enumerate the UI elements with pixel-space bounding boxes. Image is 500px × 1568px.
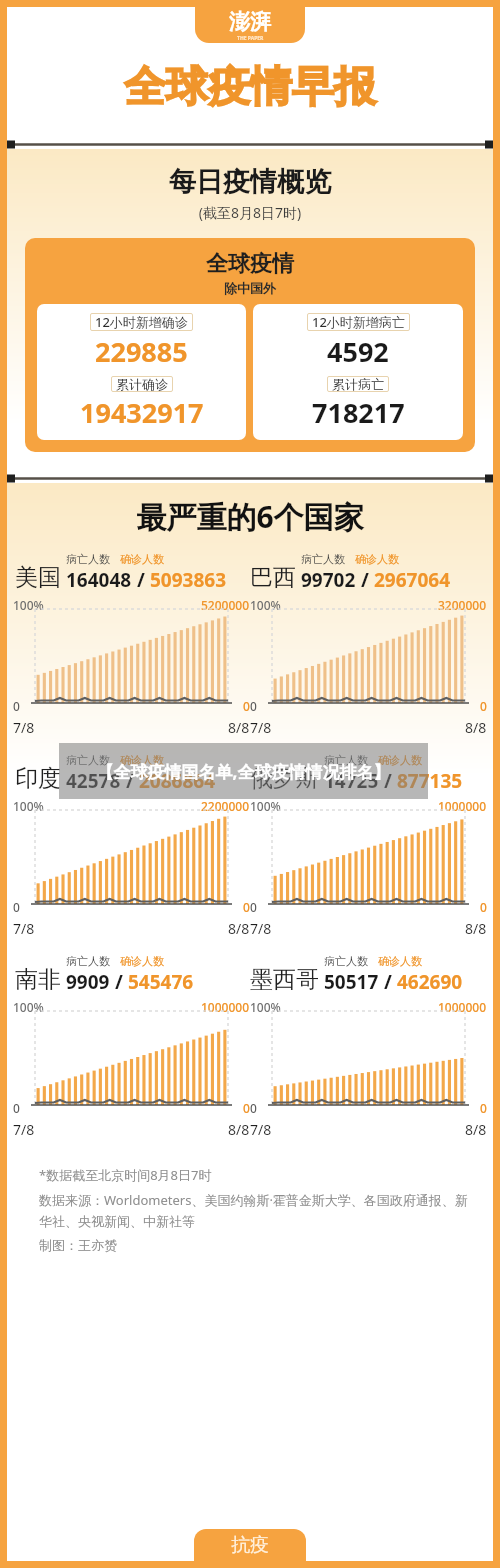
staticText: 100% xyxy=(250,798,281,814)
staticText: 全球疫情 xyxy=(206,250,294,278)
button[interactable]: 墨西哥 xyxy=(250,954,485,995)
staticText: 数据来源：Worldometers、美国约翰斯·霍普金斯大学、各国政府通报、新华… xyxy=(39,1191,469,1230)
staticText: 0 xyxy=(480,899,487,915)
staticText: 8/8 xyxy=(465,1120,487,1139)
staticText: 病亡人数 xyxy=(66,954,110,968)
staticText: 5093863 xyxy=(150,567,227,593)
staticText: 0 xyxy=(250,899,257,915)
staticText: 病亡人数 xyxy=(66,753,110,767)
staticText: 100% xyxy=(13,798,44,814)
staticText: 100% xyxy=(250,597,281,613)
staticText: 0 xyxy=(13,698,20,714)
staticText: 164048 xyxy=(66,567,132,593)
staticText: 50517 xyxy=(324,969,379,995)
staticText: 2086864 xyxy=(139,768,216,794)
staticText: 确诊人数 xyxy=(120,552,164,566)
staticText: 7/8 xyxy=(250,1120,272,1139)
staticText: / xyxy=(356,567,374,593)
staticText: 俄罗斯 xyxy=(250,764,319,793)
staticText: 制图：王亦赟 xyxy=(39,1237,117,1253)
staticText: / xyxy=(379,969,397,995)
staticText: 0 xyxy=(243,899,250,915)
staticText: *数据截至北京时间8月8日7时 xyxy=(39,1166,212,1184)
staticText: 19432917 xyxy=(80,394,204,431)
staticText: 7/8 xyxy=(13,919,35,938)
staticText: 7/8 xyxy=(13,718,35,737)
staticText: 12小时新增病亡 xyxy=(312,313,405,331)
staticText: 病亡人数 xyxy=(324,753,368,767)
staticText: 8/8 xyxy=(465,718,487,737)
staticText: 229885 xyxy=(95,333,188,370)
staticText: 巴西 xyxy=(250,563,296,592)
staticText: 3200000 xyxy=(438,597,487,613)
button[interactable]: 12小时新增确诊 xyxy=(37,304,246,440)
staticText: 718217 xyxy=(312,394,405,431)
staticText: 100% xyxy=(13,999,44,1015)
staticText: / xyxy=(110,969,128,995)
button[interactable]: The Paper logo xyxy=(195,7,305,43)
staticText: 7/8 xyxy=(13,1120,35,1139)
button[interactable]: 印度 xyxy=(15,753,250,794)
staticText: 0 xyxy=(13,1100,20,1116)
staticText: 确诊人数 xyxy=(120,954,164,968)
staticText: 澎湃 xyxy=(229,9,271,35)
staticText: 8/8 xyxy=(228,919,250,938)
staticText: 2200000 xyxy=(201,798,250,814)
staticText: 1000000 xyxy=(438,798,487,814)
staticText: THE PAPER xyxy=(237,35,264,42)
staticText: 9909 xyxy=(66,969,110,995)
staticText: 南非 xyxy=(15,965,61,994)
staticText: 8/8 xyxy=(465,919,487,938)
staticText: 99702 xyxy=(301,567,356,593)
staticText: 8/8 xyxy=(228,1120,250,1139)
staticText: 0 xyxy=(243,698,250,714)
staticText: 美国 xyxy=(15,563,61,592)
staticText: 2967064 xyxy=(374,567,451,593)
staticText: 累计病亡 xyxy=(332,376,384,392)
staticText: 7/8 xyxy=(250,919,272,938)
staticText: 1000000 xyxy=(201,999,250,1015)
staticText: 病亡人数 xyxy=(324,954,368,968)
button[interactable]: 全球疫情 xyxy=(25,238,475,452)
staticText: 4592 xyxy=(327,333,389,370)
staticText: / xyxy=(121,768,139,794)
staticText: 每日疫情概览 xyxy=(7,165,493,199)
staticText: 0 xyxy=(13,899,20,915)
staticText: 12小时新增确诊 xyxy=(95,313,188,331)
button[interactable]: 美国 xyxy=(15,552,250,593)
staticText: 8/8 xyxy=(228,718,250,737)
staticText: 累计确诊 xyxy=(116,376,168,392)
staticText: 7/8 xyxy=(250,718,272,737)
button[interactable]: 巴西 xyxy=(250,552,485,593)
staticText: / xyxy=(132,567,150,593)
staticText: 确诊人数 xyxy=(120,753,164,767)
button[interactable]: 抗疫 xyxy=(194,1529,306,1561)
staticText: / xyxy=(379,768,397,794)
staticText: 0 xyxy=(480,698,487,714)
staticText: 全球疫情早报 xyxy=(124,61,376,114)
staticText: 确诊人数 xyxy=(355,552,399,566)
staticText: 1000000 xyxy=(438,999,487,1015)
staticText: 462690 xyxy=(397,969,463,995)
staticText: (截至8月8日7时) xyxy=(7,203,493,222)
staticText: 病亡人数 xyxy=(301,552,345,566)
staticText: 42578 xyxy=(66,768,121,794)
staticText: 5200000 xyxy=(201,597,250,613)
staticText: 最严重的6个国家 xyxy=(7,496,493,537)
staticText: 0 xyxy=(480,1100,487,1116)
staticText: 除中国外 xyxy=(224,280,276,296)
button[interactable]: 南非 xyxy=(15,954,250,995)
staticText: 0 xyxy=(250,698,257,714)
staticText: 100% xyxy=(13,597,44,613)
staticText: 877135 xyxy=(397,768,463,794)
staticText: 0 xyxy=(243,1100,250,1116)
button[interactable]: 俄罗斯 xyxy=(250,753,485,794)
button[interactable]: 12小时新增病亡 xyxy=(253,304,463,440)
staticText: 14725 xyxy=(324,768,379,794)
staticText: 【全球疫情国名单,全球疫情情况排名】 xyxy=(65,760,422,783)
staticText: 抗疫 xyxy=(231,1533,269,1557)
staticText: 0 xyxy=(250,1100,257,1116)
staticText: 545476 xyxy=(128,969,194,995)
staticText: 确诊人数 xyxy=(378,753,422,767)
staticText: 确诊人数 xyxy=(378,954,422,968)
